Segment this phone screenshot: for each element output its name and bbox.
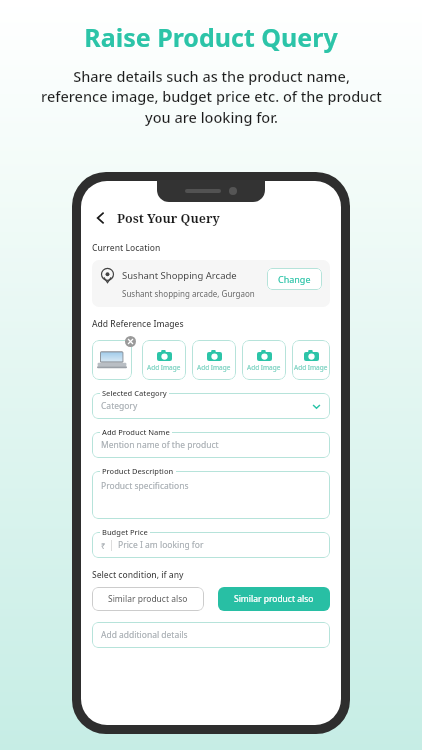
button[interactable]: Reference image [92, 340, 132, 380]
staticText: Current Location [92, 242, 161, 254]
staticText: Select condition, if any [92, 569, 184, 581]
button[interactable]: Similar product also [218, 587, 330, 611]
staticText: Budget Price [102, 527, 148, 537]
button[interactable]: Change [267, 268, 322, 290]
button[interactable]: Add Image [242, 340, 286, 380]
staticText: ₹ [101, 540, 106, 551]
staticText: Add Image [147, 363, 181, 372]
button[interactable]: Remove image [125, 336, 136, 347]
staticText: Add Image [247, 363, 281, 372]
staticText: Selected Category [102, 388, 167, 398]
button[interactable]: Add Image [292, 340, 330, 380]
staticText: Add Reference Images [92, 318, 184, 330]
staticText: Price I am looking for [118, 539, 204, 551]
button[interactable]: Add Image [192, 340, 236, 380]
button[interactable]: Sushant Shopping Arcade [92, 260, 330, 307]
staticText: Category [101, 400, 138, 412]
staticText: Product specifications [101, 480, 189, 492]
staticText: Similar product also [234, 593, 314, 605]
staticText: Product Description [102, 466, 174, 476]
staticText: Add Product Name [102, 427, 170, 437]
button[interactable]: Product specifications [92, 471, 330, 519]
button[interactable]: ₹ [92, 532, 330, 558]
staticText: Add Image [294, 363, 328, 372]
staticText: Sushant shopping arcade, Gurgaon [122, 288, 255, 299]
staticText: Similar product also [108, 593, 188, 605]
button[interactable]: Similar product also [92, 587, 204, 611]
button[interactable]: Add additional details [92, 622, 330, 648]
button[interactable]: Back [92, 209, 330, 227]
staticText: Add Image [197, 363, 231, 372]
staticText: Add additional details [101, 629, 188, 641]
staticText: Share details such as the product name, … [41, 66, 382, 128]
button[interactable]: Category [92, 393, 330, 419]
staticText: Mention name of the product [101, 439, 219, 451]
staticText: Change [278, 273, 311, 285]
button[interactable]: Mention name of the product [92, 432, 330, 458]
staticText: Sushant Shopping Arcade [122, 269, 237, 282]
staticText: Raise Product Query [84, 20, 338, 54]
other: Back [92, 209, 110, 227]
button[interactable]: Add Image [142, 340, 186, 380]
staticText: Post Your Query [117, 210, 220, 227]
